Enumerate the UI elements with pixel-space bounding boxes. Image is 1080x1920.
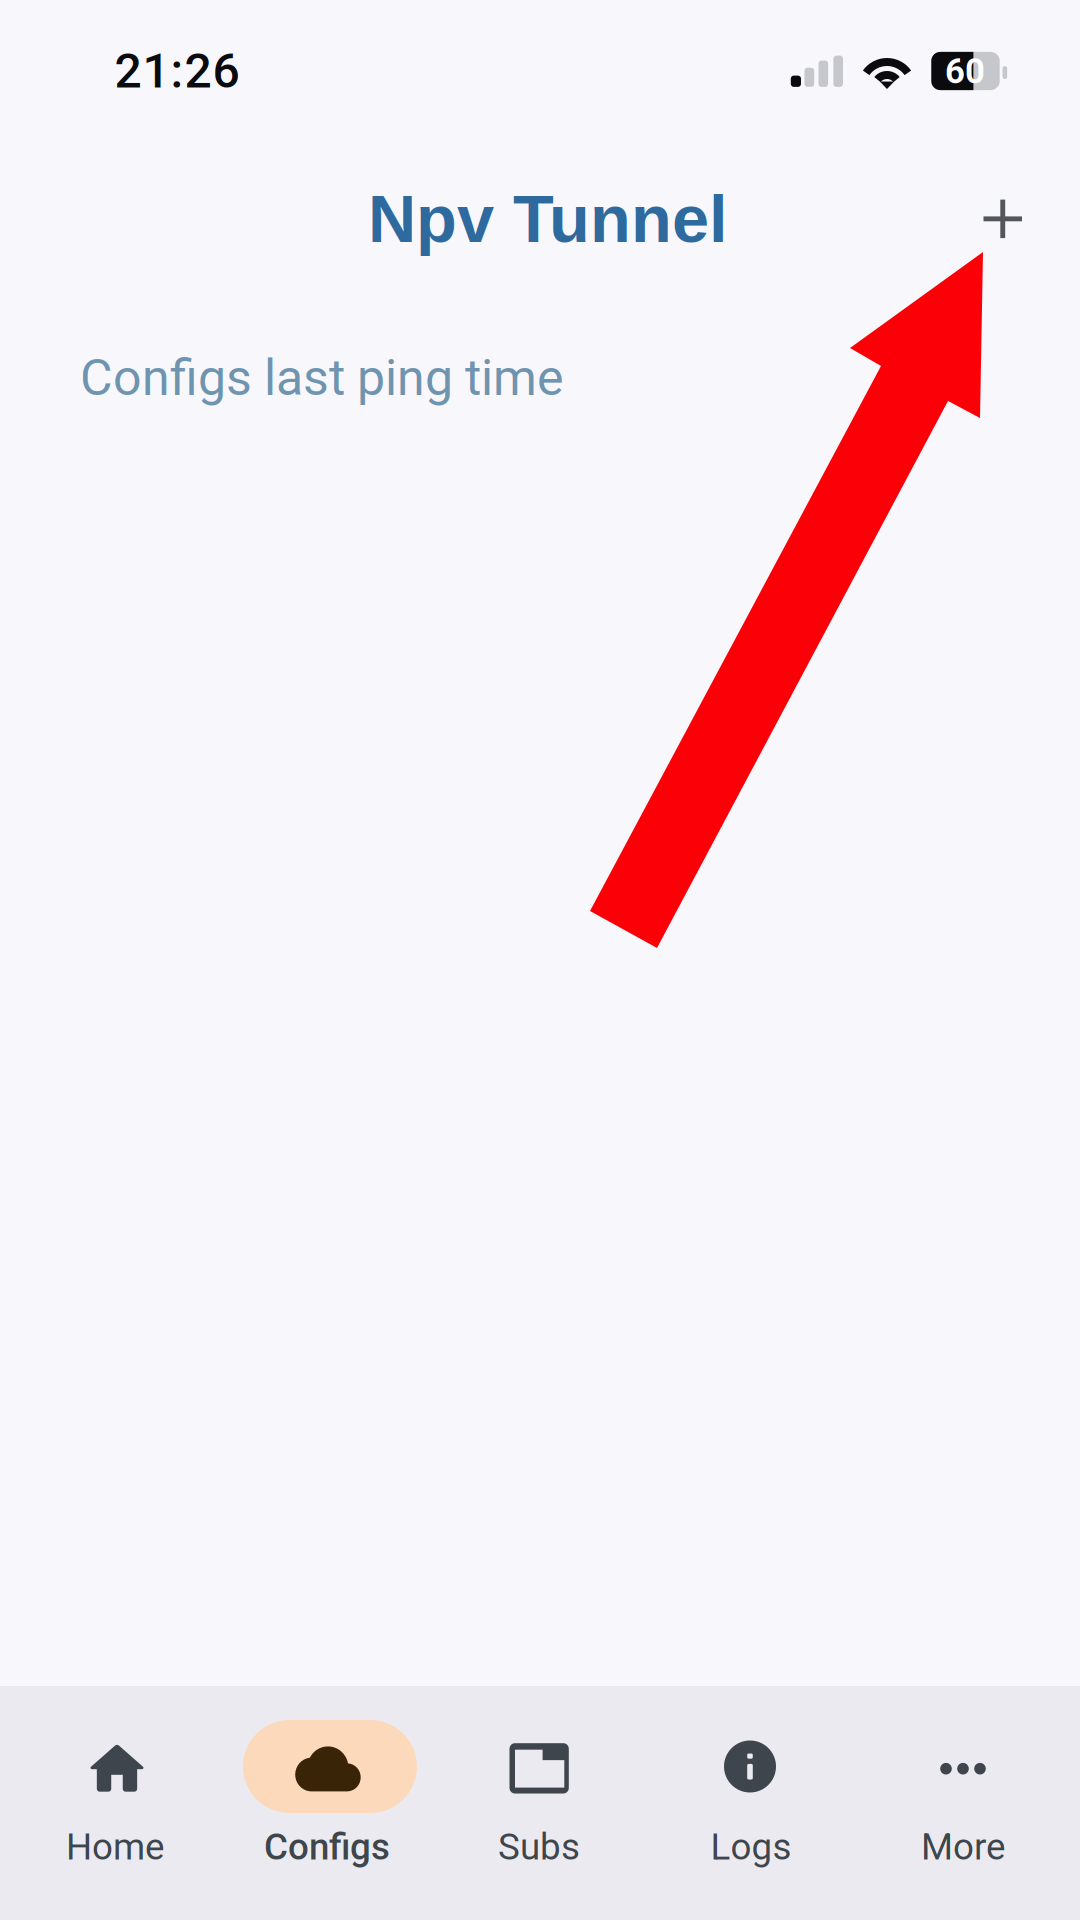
button[interactable]: Configs	[221, 1686, 433, 1920]
staticText: Logs	[710, 1825, 791, 1868]
staticText: Home	[66, 1825, 164, 1868]
staticText: Configs last ping time	[80, 349, 564, 407]
staticText: Npv Tunnel	[368, 182, 728, 256]
staticText: More	[921, 1825, 1005, 1868]
staticText: 21:26	[114, 43, 239, 99]
button[interactable]: Logs	[645, 1686, 857, 1920]
button[interactable]: Subs	[433, 1686, 645, 1920]
button[interactable]: More	[857, 1686, 1069, 1920]
button[interactable]: Home	[9, 1686, 221, 1920]
staticText: 60	[945, 51, 985, 92]
staticText: Configs	[264, 1825, 390, 1868]
staticText: Subs	[498, 1825, 580, 1868]
button[interactable]: Add configuration	[939, 158, 1065, 278]
